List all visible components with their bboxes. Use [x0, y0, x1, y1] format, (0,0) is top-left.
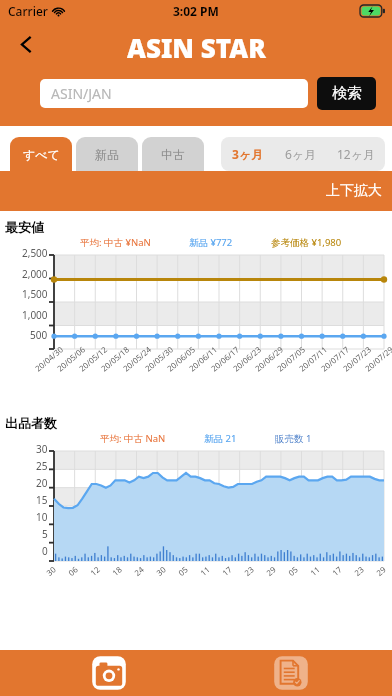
staticText: 30	[154, 563, 168, 578]
staticText: 20/05/06	[54, 343, 87, 374]
staticText: 06	[66, 563, 80, 578]
staticText: 参考価格 ¥1,980	[271, 236, 342, 249]
staticText: 20/06/05	[164, 343, 197, 374]
staticText: 20/06/23	[230, 343, 263, 374]
staticText: 29	[374, 563, 388, 578]
staticText: 0	[42, 544, 48, 558]
staticText: 18	[110, 563, 124, 578]
staticText: 500	[30, 328, 48, 342]
staticText: 平均: 中古 ¥NaN	[80, 236, 151, 249]
staticText: Carrier	[8, 3, 48, 19]
button[interactable]: Saved list	[270, 652, 312, 694]
staticText: 20/06/17	[208, 343, 241, 374]
staticText: 新品 ¥772	[189, 236, 233, 249]
staticText: ASIN/JAN	[51, 84, 112, 103]
staticText: 20/05/24	[120, 343, 153, 374]
staticText: 23	[352, 563, 366, 578]
staticText: 20/06/11	[186, 343, 219, 374]
button[interactable]: 3ヶ月	[221, 137, 275, 171]
button[interactable]: 中古	[142, 137, 204, 171]
staticText: ASIN STAR	[127, 30, 266, 65]
staticText: 05	[176, 563, 190, 578]
staticText: 検索	[332, 84, 362, 103]
staticText: 30	[36, 442, 48, 456]
staticText: 6ヶ月	[285, 146, 317, 162]
button[interactable]: ASIN/JAN	[40, 79, 308, 108]
button[interactable]: 新品	[76, 137, 138, 171]
staticText: 出品者数	[5, 415, 57, 431]
staticText: 1,000	[22, 308, 48, 322]
staticText: 1,500	[22, 287, 48, 301]
button[interactable]: すべて	[10, 137, 72, 171]
staticText: 24	[132, 563, 146, 578]
staticText: 17	[220, 563, 234, 578]
staticText: 23	[242, 563, 256, 578]
staticText: 17	[330, 563, 344, 578]
button[interactable]: 上下拡大	[316, 174, 392, 208]
button[interactable]: 6ヶ月	[275, 137, 327, 171]
staticText: 3:02 PM	[173, 3, 219, 19]
staticText: 20/07/29	[362, 343, 392, 374]
staticText: 販売数 1	[275, 432, 312, 445]
staticText: 20/05/12	[76, 343, 109, 374]
staticText: 20/05/18	[98, 343, 131, 374]
staticText: 5	[42, 527, 48, 541]
staticText: 05	[286, 563, 300, 578]
staticText: 平均: 中古 NaN	[100, 432, 166, 445]
staticText: 30	[44, 563, 58, 578]
staticText: 3ヶ月	[232, 146, 264, 162]
button[interactable]: Back	[6, 24, 46, 64]
staticText: 20/06/29	[252, 343, 285, 374]
staticText: 上下拡大	[326, 182, 382, 200]
staticText: 最安値	[5, 219, 44, 235]
staticText: 12	[88, 563, 102, 578]
staticText: 20/07/17	[318, 343, 351, 374]
staticText: 中古	[161, 147, 185, 162]
staticText: 20	[36, 476, 48, 490]
staticText: 29	[264, 563, 278, 578]
staticText: 新品 21	[204, 432, 237, 445]
staticText: 10	[36, 510, 48, 524]
staticText: 11	[308, 563, 322, 578]
staticText: すべて	[23, 147, 60, 162]
staticText: 20/07/11	[296, 343, 329, 374]
staticText: 25	[36, 459, 48, 473]
staticText: 20/07/05	[274, 343, 307, 374]
staticText: 20/07/23	[340, 343, 373, 374]
staticText: 新品	[95, 147, 119, 162]
staticText: 20/05/30	[142, 343, 175, 374]
staticText: 20/04/30	[32, 343, 65, 374]
button[interactable]: 検索	[317, 77, 376, 110]
button[interactable]: 12ヶ月	[327, 137, 385, 171]
staticText: 11	[198, 563, 212, 578]
staticText: 2,500	[22, 246, 48, 260]
button[interactable]: Camera scan	[88, 652, 130, 694]
staticText: 2,000	[22, 267, 48, 281]
staticText: 15	[36, 493, 48, 507]
staticText: 12ヶ月	[337, 146, 376, 162]
